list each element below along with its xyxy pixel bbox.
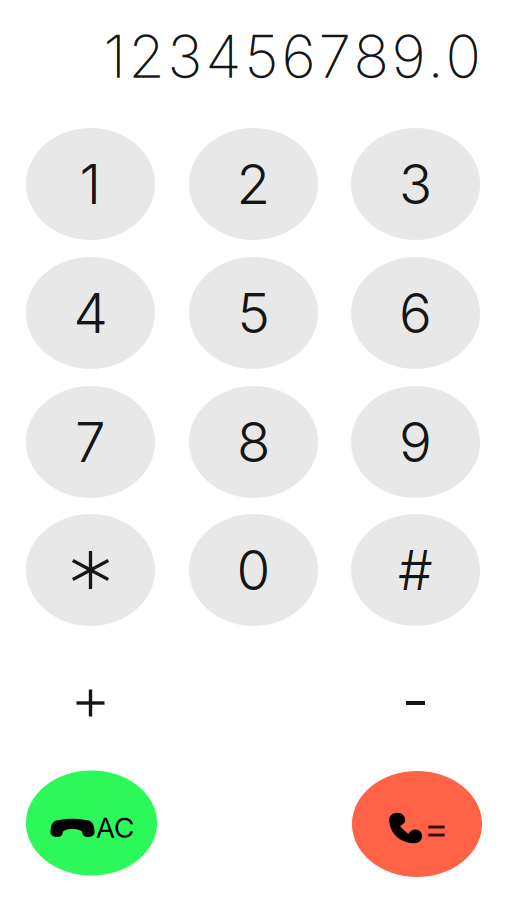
staticText: AC [96,811,134,844]
button[interactable]: 3 [351,128,480,240]
button[interactable]: 1 [26,128,155,240]
staticText: = [424,805,448,851]
button[interactable] [351,665,480,741]
button[interactable]: AC [26,770,157,875]
staticText: 6 [399,280,432,346]
staticText: 123456789.0 [103,21,480,92]
button[interactable]: 6 [351,257,480,369]
button[interactable]: 7 [26,386,155,498]
staticText: 0 [236,537,270,603]
button[interactable]: 0 [189,514,318,626]
staticText: 4 [73,280,107,346]
button[interactable]: = [352,771,482,877]
staticText: 5 [237,280,269,346]
staticText: # [398,537,433,603]
button[interactable]: 9 [351,386,480,498]
button[interactable]: 4 [26,257,155,369]
button[interactable] [26,665,155,741]
button[interactable]: 5 [189,257,318,369]
staticText: 9 [399,409,432,475]
button[interactable]: 8 [189,386,318,498]
button[interactable]: 2 [189,128,318,240]
button[interactable]: # [351,514,480,626]
staticText: 8 [237,409,270,475]
staticText: 7 [75,409,106,475]
staticText: 3 [399,151,432,217]
staticText: 1 [79,151,101,217]
button[interactable]: Star [26,514,155,626]
staticText: 2 [236,151,270,217]
